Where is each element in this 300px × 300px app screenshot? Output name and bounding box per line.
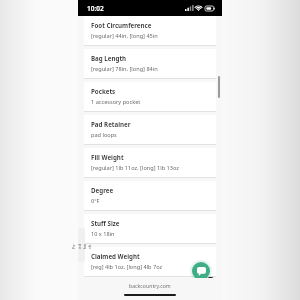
button[interactable]: Claimed Weight	[84, 247, 216, 276]
button[interactable]: Stuff Size	[84, 214, 216, 243]
staticText: 10 x 18in	[91, 230, 115, 238]
button[interactable]: Pockets	[84, 82, 216, 111]
staticText: Pad Retainer	[91, 120, 131, 128]
staticText: Bag Length	[91, 54, 127, 62]
staticText: Foot Circumference	[91, 21, 152, 29]
button[interactable]: Feedback	[78, 228, 85, 262]
button[interactable]: Bag Length	[84, 49, 216, 78]
button[interactable]: Degree	[84, 181, 216, 210]
button[interactable]: Fill Weight	[84, 148, 216, 177]
staticText: 0°F	[91, 197, 100, 205]
staticText: [regular] 44in, [long] 45in	[91, 32, 158, 40]
staticText: [regular] 1lb 11oz, [long] 1lb 13oz	[91, 164, 179, 172]
staticText: Stuff Size	[91, 219, 120, 227]
staticText: [reg] 4lb 1oz, [long] 4lb 7oz	[91, 263, 163, 271]
staticText: Claimed Weight	[91, 252, 140, 260]
staticText: Degree	[91, 186, 114, 194]
button[interactable]: Chat with us	[192, 262, 210, 280]
button[interactable]: Foot Circumference	[84, 16, 216, 45]
staticText: 10:02	[87, 4, 104, 13]
staticText: Feedback	[71, 242, 92, 249]
staticText: Pockets	[91, 87, 116, 95]
button[interactable]: Pad Retainer	[84, 115, 216, 144]
staticText: pad loops	[91, 131, 117, 139]
staticText: backcountry.com	[129, 282, 171, 289]
staticText: [regular] 78in, [long] 84in	[91, 65, 158, 73]
staticText: Fill Weight	[91, 153, 124, 161]
staticText: 1 accessory pocket	[91, 98, 141, 106]
